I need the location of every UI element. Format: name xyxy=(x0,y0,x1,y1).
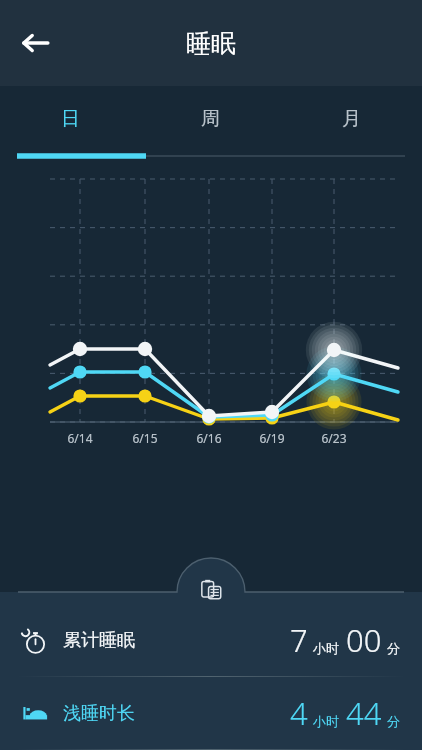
staticText: 周 xyxy=(201,107,220,131)
button[interactable]: 累计睡眠 xyxy=(0,604,422,676)
button[interactable]: Share report xyxy=(190,568,232,610)
staticText: 月 xyxy=(342,107,361,131)
staticText: 日 xyxy=(61,107,80,131)
staticText: 小时 xyxy=(313,713,339,729)
button[interactable]: 月 xyxy=(281,86,422,152)
staticText: 6/14 xyxy=(67,430,93,446)
staticText: 6/15 xyxy=(132,430,158,446)
staticText: 6/19 xyxy=(259,430,285,446)
button[interactable]: 周 xyxy=(140,86,281,152)
button[interactable]: Back xyxy=(6,14,64,72)
staticText: 44 xyxy=(346,692,382,734)
staticText: 睡眠 xyxy=(186,28,236,59)
staticText: 00 xyxy=(346,619,382,661)
button[interactable]: 日 xyxy=(0,86,140,152)
staticText: 4 xyxy=(290,692,308,734)
staticText: 6/23 xyxy=(321,430,347,446)
staticText: 累计睡眠 xyxy=(63,629,135,652)
staticText: 浅睡时长 xyxy=(63,702,135,725)
staticText: 7 xyxy=(290,619,308,661)
staticText: 分 xyxy=(387,713,400,729)
staticText: 小时 xyxy=(313,640,339,656)
staticText: 6/16 xyxy=(196,430,222,446)
staticText: 分 xyxy=(387,640,400,656)
button[interactable]: 浅睡时长 xyxy=(0,677,422,749)
